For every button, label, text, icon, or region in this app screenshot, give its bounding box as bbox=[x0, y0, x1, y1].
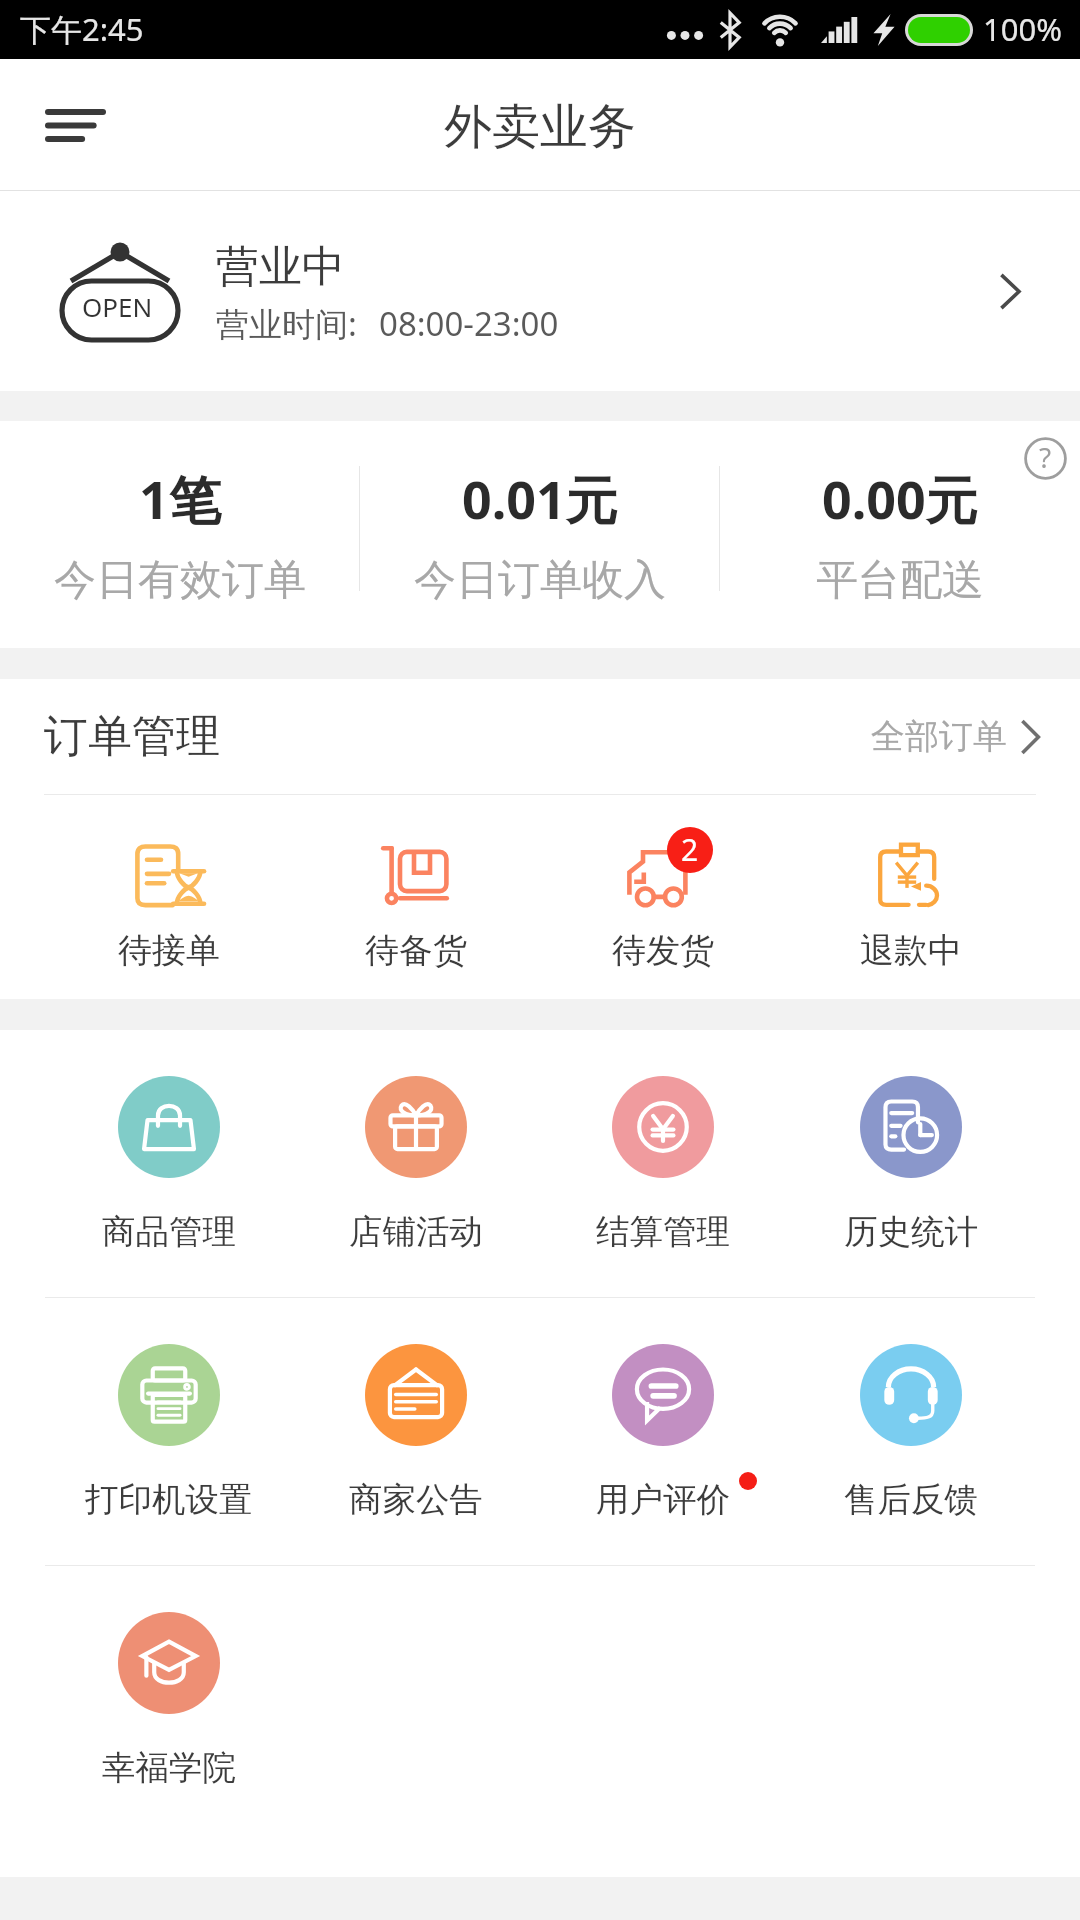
staticText: 商品管理 bbox=[102, 1211, 236, 1253]
staticText: ? bbox=[1039, 438, 1052, 476]
staticText: 商家公告 bbox=[349, 1479, 483, 1521]
staticText: 待接单 bbox=[118, 929, 220, 972]
button[interactable]: 商品管理 bbox=[45, 1030, 292, 1297]
button[interactable]: 历史统计 bbox=[787, 1030, 1035, 1297]
staticText: 08:00-23:00 bbox=[379, 301, 559, 346]
staticText: 待备货 bbox=[365, 929, 467, 972]
staticText: 全部订单 bbox=[871, 715, 1007, 758]
staticText: 下午2:45 bbox=[20, 8, 144, 50]
staticText: 营业时间: bbox=[216, 301, 357, 346]
staticText: 平台配送 bbox=[816, 554, 984, 607]
staticText: 订单管理 bbox=[44, 709, 220, 764]
button[interactable]: OPEN bbox=[0, 191, 1080, 391]
staticText: 打印机设置 bbox=[85, 1479, 253, 1521]
staticText: 待发货 bbox=[612, 929, 714, 972]
button[interactable]: 打印机设置 bbox=[45, 1298, 292, 1565]
button[interactable]: Help bbox=[1019, 432, 1071, 484]
staticText: 营业中 bbox=[216, 240, 345, 294]
button[interactable]: 1笔 bbox=[0, 421, 360, 648]
button[interactable]: 商家公告 bbox=[292, 1298, 539, 1565]
staticText: 100% bbox=[983, 8, 1062, 50]
button[interactable]: 0.01元 bbox=[360, 421, 720, 648]
staticText: 幸福学院 bbox=[102, 1747, 236, 1789]
button[interactable]: 2 bbox=[539, 795, 787, 999]
button[interactable]: Menu bbox=[26, 80, 124, 170]
button[interactable]: 全部订单 bbox=[871, 715, 1040, 758]
button[interactable]: 结算管理 bbox=[539, 1030, 787, 1297]
button[interactable]: 店铺活动 bbox=[292, 1030, 539, 1297]
staticText: 结算管理 bbox=[596, 1211, 730, 1253]
staticText: 0.01元 bbox=[462, 463, 618, 534]
staticText: 售后反馈 bbox=[844, 1479, 978, 1521]
staticText: 外卖业务 bbox=[444, 97, 636, 157]
button[interactable]: 0.00元 bbox=[720, 421, 1080, 648]
button[interactable]: 待接单 bbox=[45, 795, 292, 999]
staticText: 1笔 bbox=[139, 463, 221, 534]
staticText: 历史统计 bbox=[844, 1211, 978, 1253]
staticText: 今日订单收入 bbox=[414, 554, 666, 607]
button[interactable]: 用户评价 bbox=[539, 1298, 787, 1565]
button[interactable]: 待备货 bbox=[292, 795, 539, 999]
button[interactable]: 幸福学院 bbox=[45, 1566, 292, 1833]
staticText: 今日有效订单 bbox=[54, 554, 306, 607]
staticText: 用户评价 bbox=[596, 1479, 730, 1521]
staticText: 0.00元 bbox=[822, 463, 978, 534]
staticText: 店铺活动 bbox=[349, 1211, 483, 1253]
button[interactable]: 售后反馈 bbox=[787, 1298, 1035, 1565]
staticText: OPEN bbox=[82, 289, 153, 324]
staticText: 退款中 bbox=[860, 929, 962, 972]
staticText: 2 bbox=[681, 829, 699, 870]
button[interactable]: 退款中 bbox=[787, 795, 1035, 999]
